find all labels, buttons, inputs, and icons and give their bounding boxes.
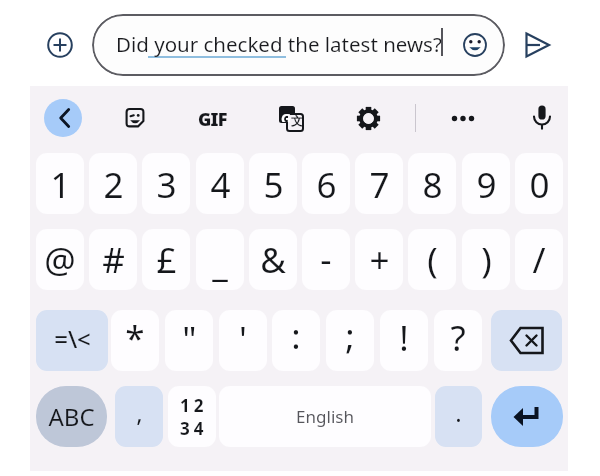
staticText: =\< (54, 322, 91, 355)
staticText: ? (450, 314, 466, 362)
button[interactable]: ABC (36, 386, 107, 447)
staticText: 7 (369, 161, 390, 209)
button[interactable]: ; (326, 310, 374, 371)
staticText: 5 (263, 161, 284, 209)
button[interactable]: , (115, 386, 163, 447)
staticText: G (281, 109, 292, 122)
button[interactable]: 9 (462, 153, 510, 214)
button[interactable]: 7 (355, 153, 403, 214)
staticText: ' (239, 315, 247, 363)
button[interactable]: 6 (302, 153, 350, 214)
staticText: £ (156, 236, 177, 284)
button[interactable]: =\< (36, 310, 108, 371)
button[interactable]: @ (36, 229, 84, 290)
staticText: # (102, 236, 125, 284)
button[interactable] (92, 14, 505, 76)
staticText: : (291, 312, 301, 360)
staticText: English (296, 405, 354, 428)
button[interactable]: _ (196, 229, 244, 290)
button[interactable]: # (89, 229, 137, 290)
button[interactable]: . (435, 386, 482, 447)
button[interactable]: ! (380, 310, 428, 371)
staticText: 34 (180, 417, 208, 440)
staticText: 3 (156, 161, 177, 209)
button[interactable]: * (111, 310, 159, 371)
staticText: 12 (180, 394, 208, 417)
staticText: ! (399, 314, 409, 362)
button[interactable]: Back (44, 99, 82, 137)
button[interactable]: 3 (142, 153, 190, 214)
staticText: 0 (529, 161, 550, 209)
button[interactable]: 2 (89, 153, 137, 214)
button[interactable] (168, 386, 216, 447)
staticText: 9 (476, 161, 497, 209)
button[interactable]: " (165, 310, 213, 371)
button[interactable]: 4 (196, 153, 244, 214)
staticText: + (369, 236, 390, 284)
button[interactable]: More options (451, 112, 475, 125)
button[interactable]: £ (142, 229, 190, 290)
staticText: - (320, 235, 332, 283)
staticText: & (260, 236, 286, 284)
button[interactable]: 8 (408, 153, 456, 214)
staticText: / (532, 236, 546, 284)
button[interactable]: Send (524, 31, 551, 59)
staticText: ( (427, 236, 438, 284)
button[interactable]: / (515, 229, 563, 290)
button[interactable]: & (249, 229, 297, 290)
staticText: 2 (103, 161, 124, 209)
button[interactable]: : (272, 310, 320, 371)
staticText: 4 (210, 161, 231, 209)
button[interactable]: + (355, 229, 403, 290)
button[interactable]: 5 (249, 153, 297, 214)
staticText: , (136, 396, 143, 429)
button[interactable]: GIF (195, 106, 229, 130)
staticText: 8 (422, 161, 443, 209)
staticText: ABC (48, 400, 95, 433)
staticText: Did your checked the latest news? (116, 30, 442, 58)
staticText: * (125, 314, 145, 362)
button[interactable]: Settings (356, 106, 381, 131)
button[interactable]: Voice input (531, 104, 553, 132)
staticText: 1 (50, 161, 71, 209)
button[interactable]: English (219, 386, 431, 447)
button[interactable]: Add (47, 32, 73, 58)
staticText: @ (44, 236, 76, 284)
button[interactable]: 0 (515, 153, 563, 214)
button[interactable]: Enter (491, 386, 563, 447)
button[interactable]: Emoji (463, 33, 487, 57)
button[interactable]: Stickers (124, 107, 146, 129)
button[interactable]: ' (219, 310, 267, 371)
staticText: _ (212, 240, 228, 288)
button[interactable]: ? (434, 310, 482, 371)
staticText: ) (481, 236, 492, 284)
staticText: ; (345, 312, 355, 360)
staticText: GIF (198, 107, 227, 131)
button[interactable]: - (302, 229, 350, 290)
button[interactable]: 1 (36, 153, 84, 214)
button[interactable]: ) (462, 229, 510, 290)
button[interactable]: Backspace (491, 310, 562, 371)
button[interactable]: Translate (279, 106, 304, 132)
staticText: 6 (316, 161, 337, 209)
button[interactable]: ( (408, 229, 456, 290)
staticText: 文 (291, 113, 303, 127)
staticText: " (182, 315, 197, 363)
staticText: . (455, 396, 462, 429)
